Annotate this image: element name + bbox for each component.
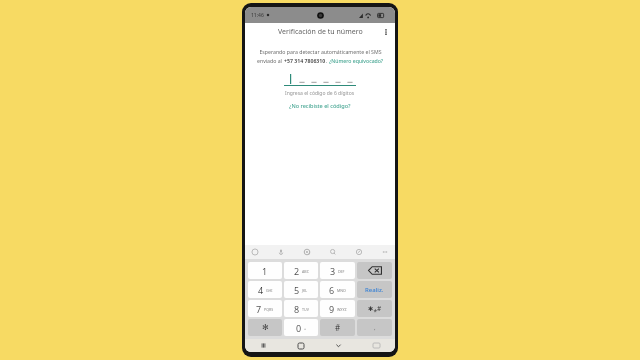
staticText: 8 <box>294 303 300 315</box>
button[interactable]: More <box>380 247 390 257</box>
button[interactable]: 9 <box>320 300 355 317</box>
button[interactable]: Hide keyboard <box>319 339 357 352</box>
staticText: 9 <box>329 303 335 315</box>
staticText: ABC <box>302 269 309 274</box>
staticText: 4 <box>258 284 264 296</box>
staticText: , <box>374 324 376 332</box>
staticText: MNO <box>337 288 346 293</box>
staticText: Esperando para detectar automáticamente … <box>259 48 382 55</box>
button[interactable]: 2 <box>284 262 318 279</box>
staticText: Verificación de tu número <box>278 27 363 37</box>
button[interactable]: 5 <box>284 281 318 298</box>
button[interactable]: Voice input <box>276 247 286 257</box>
button[interactable]: Recents <box>245 339 282 352</box>
staticText: . <box>326 57 329 64</box>
button[interactable]: 0 <box>284 319 318 336</box>
button[interactable]: Realiz. <box>357 281 392 298</box>
staticText: 0 <box>296 322 302 334</box>
staticText: 2 <box>294 265 300 277</box>
staticText: ¿No recibiste el código? <box>289 102 351 110</box>
button[interactable]: ¿No recibiste el código? <box>289 102 351 110</box>
button[interactable]: More options <box>380 26 392 38</box>
staticText: 3 <box>330 265 336 277</box>
staticText: 1 <box>262 265 268 277</box>
button[interactable]: 3 <box>320 262 355 279</box>
button[interactable]: Symbols <box>357 300 392 317</box>
button[interactable]: Home <box>282 339 319 352</box>
staticText: ¿Número equivocado? <box>329 57 384 64</box>
button[interactable]: ✻ <box>248 319 282 336</box>
button[interactable]: ¿Número equivocado? <box>329 57 384 64</box>
button[interactable]: Settings <box>302 247 312 257</box>
staticText: 6 <box>329 284 335 296</box>
button[interactable]: Delete <box>357 262 392 279</box>
staticText: + <box>304 326 307 331</box>
staticText: 11:46 <box>251 12 264 19</box>
staticText: # <box>335 322 341 333</box>
button[interactable]: 8 <box>284 300 318 317</box>
staticText: PQRS <box>264 307 274 312</box>
button[interactable]: 7 <box>248 300 282 317</box>
staticText: +57 314 7806310 <box>284 57 326 64</box>
button[interactable]: 6 <box>320 281 355 298</box>
staticText: GHI <box>266 288 273 293</box>
staticText: 5 <box>294 284 300 296</box>
staticText: ✱⁎# <box>368 304 382 313</box>
staticText: WXYZ <box>337 307 347 312</box>
button[interactable]: Handwriting <box>354 247 364 257</box>
button[interactable] <box>284 71 356 87</box>
staticText: TUV <box>302 307 309 312</box>
staticText: DEF <box>338 269 345 274</box>
staticText: Realiz. <box>365 286 384 294</box>
button[interactable]: Stickers <box>250 247 260 257</box>
button[interactable]: 1 <box>248 262 282 279</box>
staticText: enviado al <box>257 57 284 64</box>
staticText: JKL <box>302 288 308 293</box>
staticText: Ingresa el código de 6 dígitos <box>285 90 355 97</box>
button[interactable]: Keyboard layout <box>357 339 395 352</box>
button[interactable]: # <box>320 319 355 336</box>
button[interactable]: 4 <box>248 281 282 298</box>
staticText: ✻ <box>262 323 269 332</box>
button[interactable]: Search <box>328 247 338 257</box>
staticText: 7 <box>256 303 262 315</box>
